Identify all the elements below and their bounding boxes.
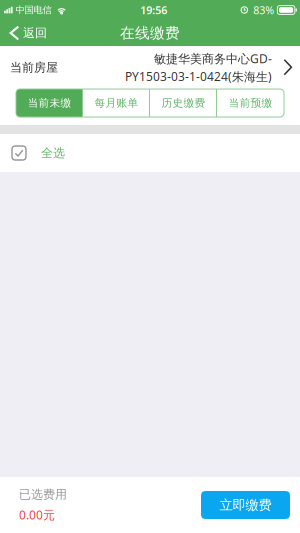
button[interactable]: 返回 [0,20,56,46]
button[interactable]: 全选 [0,134,300,172]
staticText: 历史缴费 [161,96,205,109]
staticText: 在线缴费 [120,24,180,42]
staticText: 每月账单 [94,96,138,109]
staticText: PY1503-03-1-0424(朱海生) [125,68,272,84]
staticText: 83% [253,3,274,17]
staticText: 敏捷华美商务中心GD- [154,50,272,66]
staticText: 当前房屋 [10,60,58,75]
staticText: 0.00元 [19,507,55,523]
staticText: 当前预缴 [228,96,272,109]
staticText: 已选费用 [19,487,67,502]
button[interactable]: 每月账单 [83,89,150,117]
button[interactable]: 当前房屋 [0,46,300,89]
button[interactable]: 历史缴费 [150,89,217,117]
button[interactable]: 立即缴费 [201,491,290,519]
button[interactable]: 当前未缴 [16,89,83,117]
staticText: 立即缴费 [219,497,271,513]
staticText: 当前未缴 [27,96,71,109]
staticText: 19:56 [140,3,167,17]
staticText: 返回 [23,26,47,40]
staticText: 全选 [41,146,65,160]
button[interactable]: 当前预缴 [217,89,284,117]
staticText: 中国电信 [16,4,52,16]
